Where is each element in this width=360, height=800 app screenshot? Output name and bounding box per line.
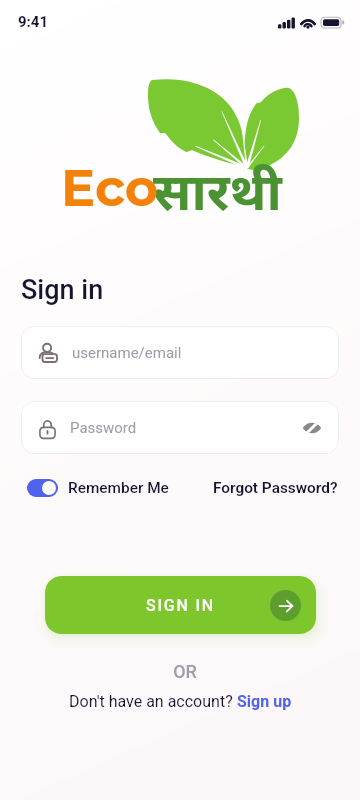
button[interactable]: Show password xyxy=(299,415,325,441)
staticText: Forgot Password? xyxy=(213,479,338,497)
staticText: Eco xyxy=(61,157,159,219)
button[interactable]: Sign up xyxy=(237,692,292,711)
staticText: Remember Me xyxy=(68,479,169,497)
staticText: Sign in xyxy=(21,274,104,306)
staticText: Sign up xyxy=(237,692,292,711)
button[interactable]: Password xyxy=(21,401,339,454)
staticText: 9:41 xyxy=(18,13,49,31)
button[interactable]: Remember Me xyxy=(27,479,169,497)
staticText: सारथी xyxy=(153,163,282,231)
button[interactable]: Forgot Password? xyxy=(213,479,338,497)
staticText: OR xyxy=(5,661,360,682)
staticText: Password xyxy=(70,419,137,437)
button[interactable]: username/email xyxy=(21,326,339,379)
button[interactable]: SIGN IN xyxy=(45,576,316,634)
staticText: username/email xyxy=(72,344,182,362)
staticText: Don't have an account? xyxy=(69,692,237,711)
staticText: SIGN IN xyxy=(146,596,215,615)
